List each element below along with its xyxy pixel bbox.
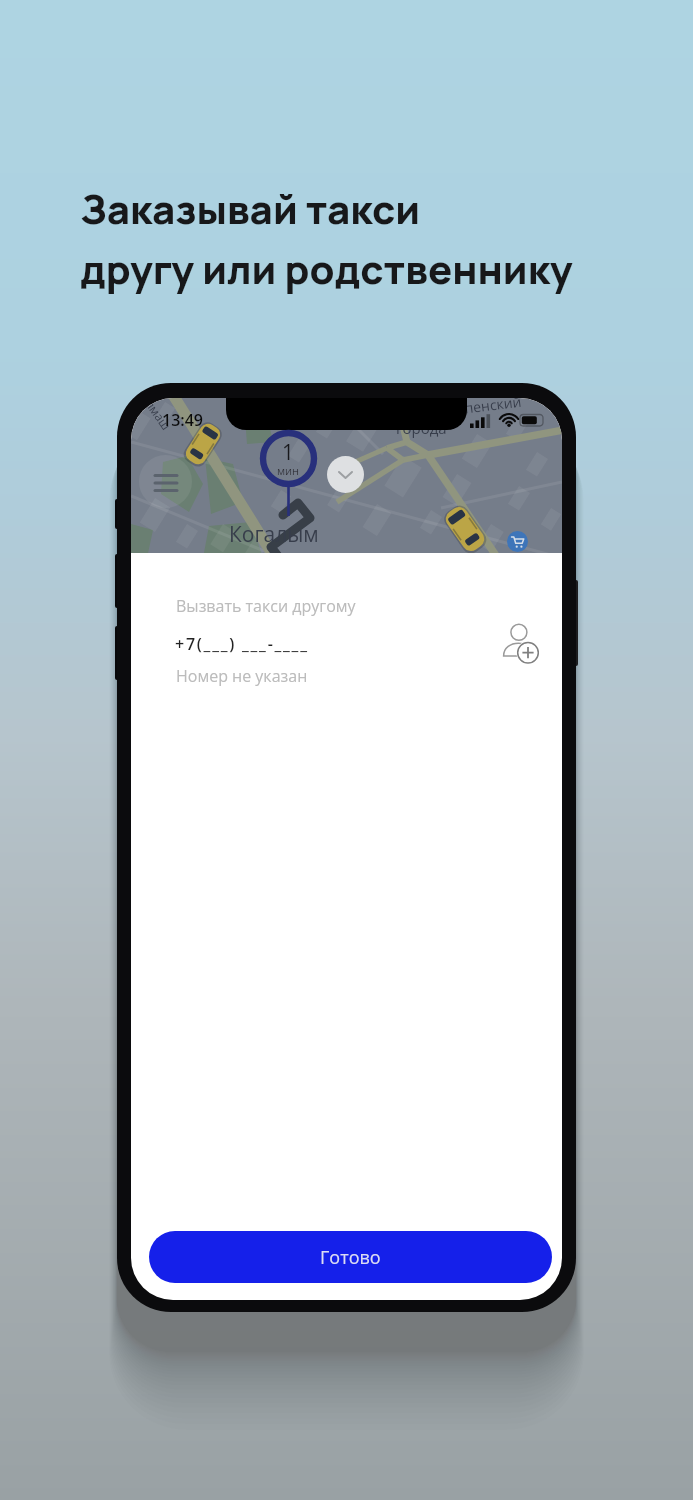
- staticText: Успенский: [448, 398, 523, 419]
- button[interactable]: Готово: [149, 1231, 552, 1283]
- staticText: 13:49: [162, 409, 203, 431]
- staticText: Номер не указан: [176, 665, 308, 687]
- staticText: 1: [282, 438, 295, 467]
- staticText: города: [396, 418, 447, 438]
- button[interactable]: Shop: [507, 531, 528, 552]
- button[interactable]: Add contact: [494, 607, 546, 659]
- staticText: Вызвать такси другому: [176, 595, 356, 617]
- staticText: +7(___) ___-____: [175, 633, 309, 655]
- staticText: Уралмаш: [131, 398, 175, 433]
- staticText: Когалым: [229, 520, 319, 549]
- staticText: мин: [277, 463, 300, 478]
- button[interactable]: Menu: [139, 455, 192, 508]
- staticText: Готово: [320, 1245, 381, 1270]
- button[interactable]: Collapse: [327, 456, 364, 493]
- staticText: Заказывай такси другу или родственнику: [80, 181, 573, 296]
